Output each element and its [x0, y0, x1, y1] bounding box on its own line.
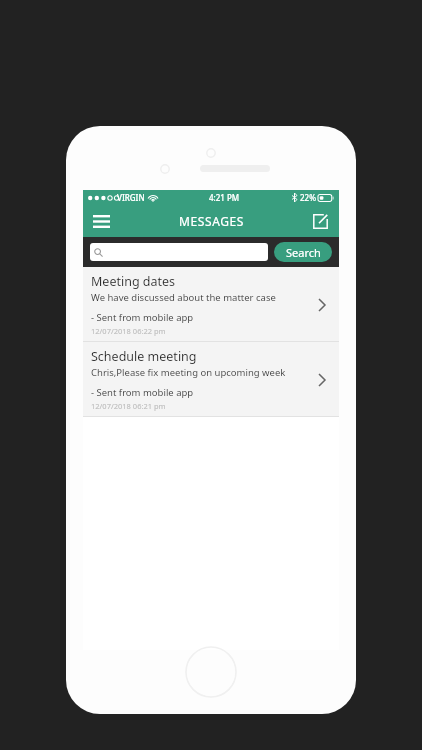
staticText: MESSAGES — [179, 213, 244, 229]
staticText: Schedule meeting — [91, 348, 197, 365]
other: Open — [311, 294, 333, 316]
button[interactable]: Meeting dates — [83, 267, 339, 341]
button[interactable]: Compose message — [307, 208, 333, 234]
staticText: Meeting dates — [91, 273, 176, 290]
button[interactable]: Menu — [88, 208, 114, 234]
button[interactable] — [90, 243, 268, 261]
staticText: - Sent from mobile app — [91, 311, 194, 324]
other: Open — [311, 369, 333, 391]
button[interactable]: Schedule meeting — [83, 342, 339, 416]
staticText: 12/07/2018 06:22 pm — [91, 326, 166, 336]
staticText: - Sent from mobile app — [91, 386, 194, 399]
staticText: VIRGIN — [117, 192, 145, 203]
staticText: 4:21 PM — [209, 192, 240, 203]
staticText: Chris,Please fix meeting on upcoming wee… — [91, 366, 286, 379]
staticText: Search — [286, 245, 321, 260]
staticText: 22% — [300, 192, 316, 203]
button[interactable]: Search — [274, 242, 332, 262]
staticText: We have discussed about the matter case — [91, 291, 276, 304]
staticText: 12/07/2018 06:21 pm — [91, 401, 166, 411]
